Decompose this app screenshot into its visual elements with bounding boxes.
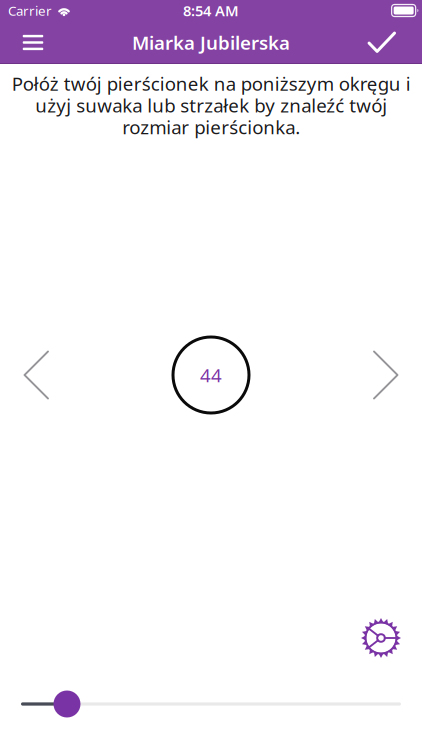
staticText: Carrier	[8, 2, 52, 19]
staticText: Miarka Jubilerska	[132, 30, 290, 55]
button[interactable]: Previous size	[5, 337, 67, 413]
button[interactable]: Next size	[355, 337, 417, 413]
button[interactable]: Settings	[355, 612, 407, 664]
staticText: 8:54 AM	[183, 1, 239, 20]
staticText: 44	[200, 363, 222, 387]
button[interactable]: Done	[355, 21, 407, 63]
staticText: Połóż twój pierścionek na poniższym okrę…	[11, 71, 410, 139]
button[interactable]: Menu	[7, 21, 59, 63]
